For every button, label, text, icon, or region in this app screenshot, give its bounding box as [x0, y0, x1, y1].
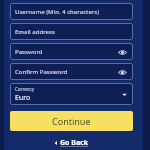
button[interactable]: Continue	[10, 111, 133, 131]
other: Open currency list	[121, 91, 128, 98]
button[interactable]: Confirm Password	[10, 63, 133, 80]
button[interactable]: Go Back	[52, 136, 91, 150]
staticText: Username (Min. 4 characters)	[15, 8, 100, 16]
button[interactable]: Username (Min. 4 characters)	[10, 3, 133, 20]
staticText: Password	[15, 48, 43, 56]
staticText: Euro	[15, 93, 31, 102]
button[interactable]: Show password	[116, 66, 128, 78]
button[interactable]: Currency	[10, 83, 133, 105]
button[interactable]: Email address	[10, 23, 133, 40]
staticText: Currency	[15, 86, 35, 92]
staticText: Email address	[15, 28, 55, 36]
button[interactable]: Show password	[116, 46, 128, 58]
staticText: Continue	[52, 115, 91, 127]
staticText: Confirm Password	[15, 68, 68, 76]
staticText: Go Back	[60, 138, 89, 148]
button[interactable]: Password	[10, 43, 133, 60]
